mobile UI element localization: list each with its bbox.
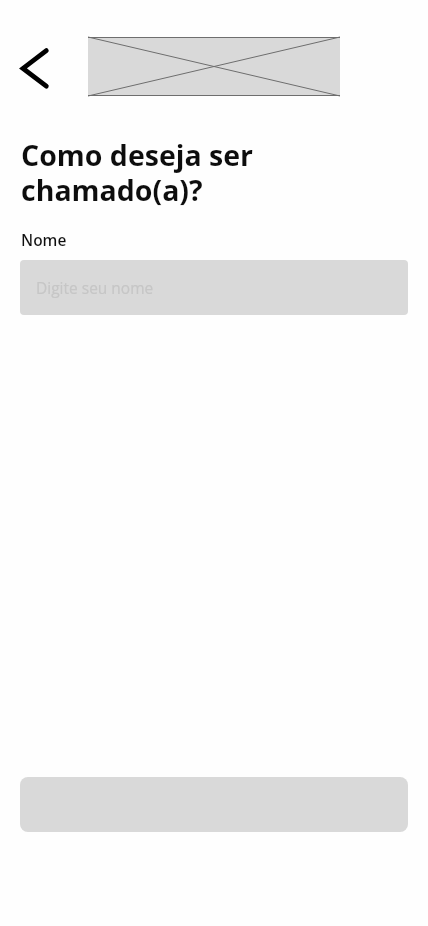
staticText: Digite seu nome xyxy=(36,277,154,298)
button[interactable]: Back xyxy=(2,44,66,92)
staticText: Como deseja ser chamado(a)? xyxy=(21,136,253,209)
staticText: Nome xyxy=(21,229,67,250)
